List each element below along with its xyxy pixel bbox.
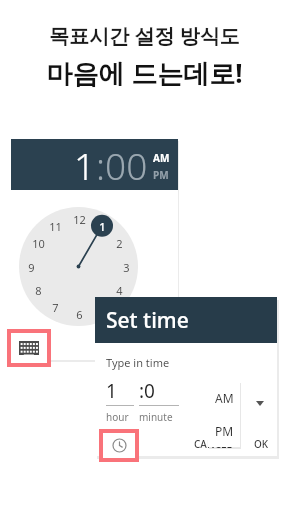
button[interactable]: 1	[106, 378, 134, 404]
button[interactable]: 1	[19, 207, 138, 326]
button[interactable]: CANCEL	[194, 437, 232, 451]
button[interactable]: Set time	[95, 297, 277, 343]
staticText: Set time	[106, 306, 189, 335]
staticText: :00	[96, 140, 148, 190]
staticText: minute	[139, 410, 173, 424]
staticText: 2	[116, 236, 123, 251]
staticText: 1	[106, 378, 117, 404]
button[interactable]: AM	[208, 381, 240, 414]
staticText: AM	[215, 390, 234, 406]
staticText: 8	[35, 283, 42, 298]
staticText: hour	[106, 410, 129, 424]
staticText: :0	[139, 378, 155, 404]
staticText: 목표시간 설정 방식도	[49, 22, 240, 49]
staticText: 12	[73, 212, 86, 227]
button[interactable]: 1	[74, 140, 170, 190]
staticText: 7	[52, 300, 59, 315]
staticText: 6	[76, 307, 83, 322]
staticText: Type in time	[106, 355, 170, 370]
staticText: 9	[28, 260, 35, 275]
staticText: 4	[116, 283, 123, 298]
staticText: PM	[215, 423, 234, 439]
button[interactable]: Switch to text input	[11, 333, 47, 363]
button[interactable]: OK	[254, 437, 269, 451]
staticText: 11	[49, 219, 62, 234]
staticText: 3	[123, 260, 130, 275]
staticText: 1	[74, 140, 96, 190]
button[interactable]: :0	[139, 378, 179, 404]
button[interactable]: PM	[153, 168, 169, 182]
button[interactable]: Expand AM PM	[253, 396, 267, 410]
button[interactable]: PM	[208, 414, 240, 447]
staticText: 마음에 드는데로!	[46, 55, 243, 91]
staticText: 10	[32, 236, 45, 251]
button[interactable]: AM	[153, 151, 170, 165]
button[interactable]: Switch to clock picker	[103, 433, 135, 458]
staticText: 1	[99, 219, 106, 234]
